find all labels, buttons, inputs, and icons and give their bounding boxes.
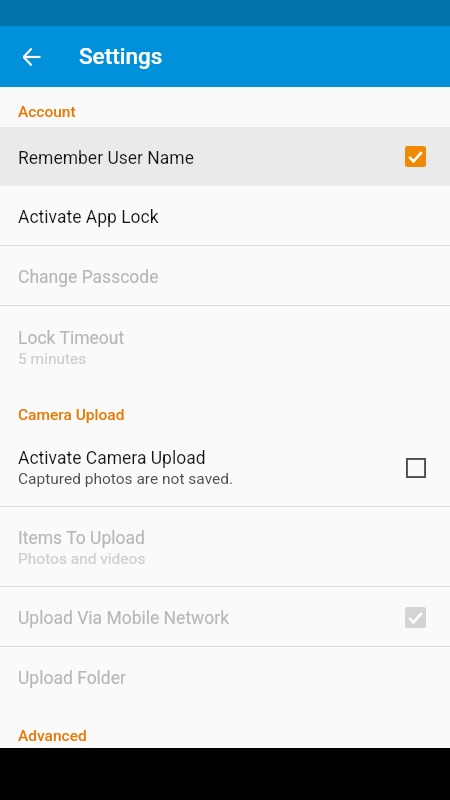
staticText: Settings xyxy=(79,43,163,69)
button[interactable]: Upload Folder xyxy=(0,647,450,707)
button[interactable]: Back xyxy=(0,26,61,87)
staticText: Change Passcode xyxy=(18,267,159,288)
button[interactable]: Change Passcode xyxy=(0,246,450,306)
button[interactable]: Activate Camera Upload xyxy=(0,428,450,507)
staticText: Activate App Lock xyxy=(18,207,159,228)
staticText: Photos and videos xyxy=(18,550,146,568)
button[interactable]: Upload Via Mobile Network xyxy=(0,587,450,647)
staticText: 5 minutes xyxy=(18,350,87,368)
staticText: Advanced xyxy=(18,727,87,745)
button[interactable]: Remember User Name xyxy=(0,127,450,186)
button[interactable]: Items To Upload xyxy=(0,507,450,587)
staticText: Remember User Name xyxy=(18,148,194,169)
staticText: Activate Camera Upload xyxy=(18,448,206,469)
staticText: Lock Timeout xyxy=(18,328,125,349)
staticText: Upload Folder xyxy=(18,668,126,689)
button[interactable]: Lock Timeout xyxy=(0,306,450,389)
staticText: Items To Upload xyxy=(18,528,145,549)
staticText: Captured photos are not saved. xyxy=(18,470,234,488)
staticText: Account xyxy=(18,103,76,121)
staticText: Camera Upload xyxy=(18,406,125,424)
button[interactable]: Activate App Lock xyxy=(0,186,450,246)
staticText: Upload Via Mobile Network xyxy=(18,608,230,629)
